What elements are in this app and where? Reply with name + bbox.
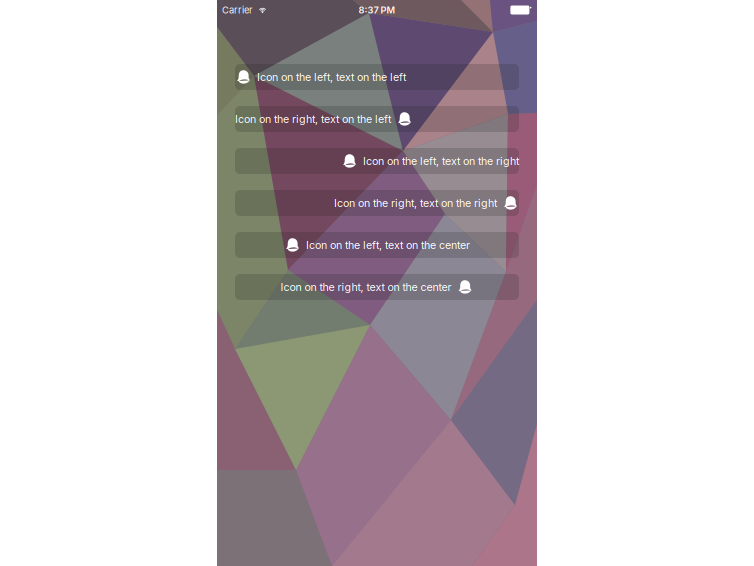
button[interactable]: Icon on the right, text on the left — [235, 106, 519, 132]
staticText: Icon on the left, text on the center — [306, 238, 470, 251]
button[interactable]: Icon on the left, text on the center — [235, 232, 519, 258]
button[interactable]: Icon on the left, text on the right — [235, 148, 519, 174]
staticText: 8:37 PM — [358, 4, 395, 16]
staticText: Icon on the left, text on the left — [257, 70, 406, 83]
button[interactable]: Icon on the right, text on the right — [235, 190, 519, 216]
button[interactable]: Icon on the right, text on the center — [235, 274, 519, 300]
button[interactable]: Icon on the left, text on the left — [235, 64, 519, 90]
staticText: Carrier — [222, 4, 253, 16]
staticText: Icon on the right, text on the left — [235, 112, 391, 125]
staticText: Icon on the right, text on the center — [280, 280, 451, 293]
staticText: Icon on the left, text on the right — [363, 154, 519, 167]
staticText: Icon on the right, text on the right — [334, 196, 497, 209]
